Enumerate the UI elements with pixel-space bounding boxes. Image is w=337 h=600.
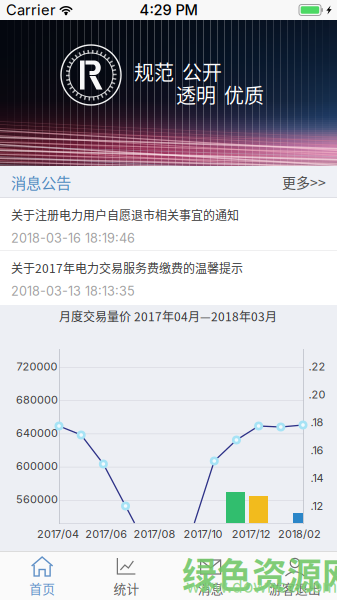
staticText: 透明 优质 bbox=[176, 80, 264, 109]
button[interactable]: 关于注册电力用户自愿退市相关事宜的通知 bbox=[0, 198, 337, 251]
staticText: Carrier bbox=[6, 1, 56, 19]
staticText: .18 bbox=[310, 416, 323, 429]
staticText: 游客退出 bbox=[269, 579, 321, 597]
staticText: .14 bbox=[310, 471, 323, 485]
staticText: .16 bbox=[310, 444, 323, 457]
staticText: .20 bbox=[308, 388, 325, 401]
staticText: 2017/06 bbox=[85, 527, 127, 541]
button[interactable]: 更多>> bbox=[282, 172, 326, 192]
staticText: 2017/08 bbox=[134, 527, 176, 541]
staticText: 均价/元 bbox=[190, 548, 227, 564]
staticText: 720000 bbox=[16, 360, 57, 373]
staticText: 消息公告 bbox=[11, 171, 71, 193]
staticText: 2017/04 bbox=[37, 527, 79, 541]
staticText: 绿色资源网 bbox=[182, 548, 337, 598]
staticText: 4:29 PM bbox=[139, 1, 197, 19]
staticText: 2018-03-13 18:13:35 bbox=[11, 283, 135, 299]
staticText: 更多>> bbox=[282, 172, 326, 192]
staticText: 首页 bbox=[29, 579, 55, 597]
staticText: 2017/12 bbox=[232, 527, 271, 541]
staticText: 统计 bbox=[113, 579, 139, 597]
button[interactable]: 游客退出 bbox=[253, 556, 337, 600]
staticText: 关于注册电力用户自愿退市相关事宜的通知 bbox=[11, 206, 239, 223]
staticText: www.downcc.com bbox=[186, 576, 337, 597]
staticText: 640000 bbox=[16, 426, 58, 439]
staticText: 560000 bbox=[16, 493, 58, 506]
button[interactable]: 关于2017年电力交易服务费缴费的温馨提示 bbox=[0, 251, 337, 305]
staticText: .22 bbox=[308, 360, 325, 373]
staticText: 月度交易量价 2017年04月—2018年03月 bbox=[59, 307, 277, 325]
staticText: 600000 bbox=[16, 459, 58, 473]
staticText: 2018/02 bbox=[278, 527, 321, 541]
staticText: 关于2017年电力交易服务费缴费的温馨提示 bbox=[11, 259, 243, 276]
staticText: 电量/万kwh bbox=[114, 548, 173, 564]
button[interactable]: 消息公告 bbox=[11, 171, 71, 193]
button[interactable]: 消息 bbox=[168, 556, 253, 600]
button[interactable]: 首页 bbox=[0, 556, 84, 600]
staticText: 2018-03-16 18:19:46 bbox=[11, 230, 135, 246]
staticText: 规范 公开 bbox=[134, 57, 222, 86]
staticText: .12 bbox=[310, 499, 323, 513]
button[interactable]: 统计 bbox=[84, 556, 168, 600]
staticText: 2017/10 bbox=[183, 527, 222, 541]
staticText: 680000 bbox=[16, 393, 58, 406]
staticText: 消息 bbox=[198, 579, 224, 597]
